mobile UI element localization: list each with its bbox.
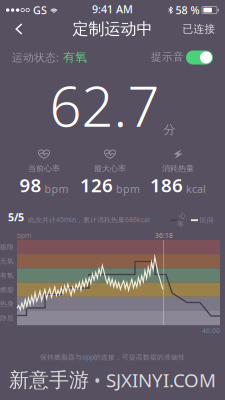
staticText: 静息: [0, 314, 14, 322]
staticText: 已连接: [182, 22, 215, 35]
staticText: 分: [163, 122, 175, 137]
staticText: SJXINYI.COM: [106, 368, 216, 392]
staticText: 热身: [0, 300, 14, 308]
staticText: bpm: [17, 231, 31, 240]
staticText: •: [89, 368, 106, 391]
staticText: 保持燃脂器与app的连接，可提高数据的准确性: [40, 353, 185, 361]
staticText: 心率: [177, 212, 186, 228]
staticText: bpm: [116, 182, 140, 196]
staticText: 46:00: [202, 326, 220, 335]
staticText: 当前心率: [28, 164, 60, 173]
staticText: 62.7: [49, 68, 159, 142]
staticText: 98: [19, 173, 41, 197]
staticText: 126: [80, 173, 113, 197]
button[interactable]: 返回: [4, 19, 34, 39]
staticText: 消耗热量: [162, 164, 194, 173]
staticText: 运动状态:: [12, 50, 59, 64]
staticText: 燃脂: [0, 286, 14, 294]
staticText: 此次共计45min，累计消耗热量686kcal: [24, 215, 150, 224]
staticText: kcal: [186, 182, 206, 196]
staticText: 提示音: [151, 50, 184, 63]
staticText: 9:41 AM: [92, 2, 133, 16]
staticText: bpm: [44, 182, 68, 196]
staticText: 无氧: [0, 257, 14, 265]
staticText: 区间: [198, 216, 214, 224]
staticText: 新意手游: [9, 368, 89, 392]
staticText: 最大心率: [94, 164, 126, 173]
staticText: 极限: [0, 243, 14, 251]
staticText: GS: [33, 3, 47, 17]
button[interactable]: 提示音: [186, 50, 213, 64]
staticText: 有氧: [59, 50, 87, 65]
staticText: 定制运动中: [72, 19, 152, 39]
staticText: 5/5: [8, 210, 24, 224]
staticText: 58 %: [175, 3, 199, 17]
button[interactable]: 已连接: [178, 19, 220, 39]
staticText: 有氧: [0, 271, 14, 280]
staticText: 36:18: [155, 231, 173, 240]
staticText: 186: [150, 173, 183, 197]
